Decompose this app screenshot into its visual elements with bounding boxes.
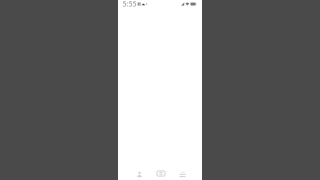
button[interactable]: Feed xyxy=(172,167,193,180)
button[interactable]: Camera xyxy=(150,167,172,180)
staticText: 5:55 xyxy=(122,0,136,8)
button[interactable]: Profile xyxy=(129,167,150,180)
